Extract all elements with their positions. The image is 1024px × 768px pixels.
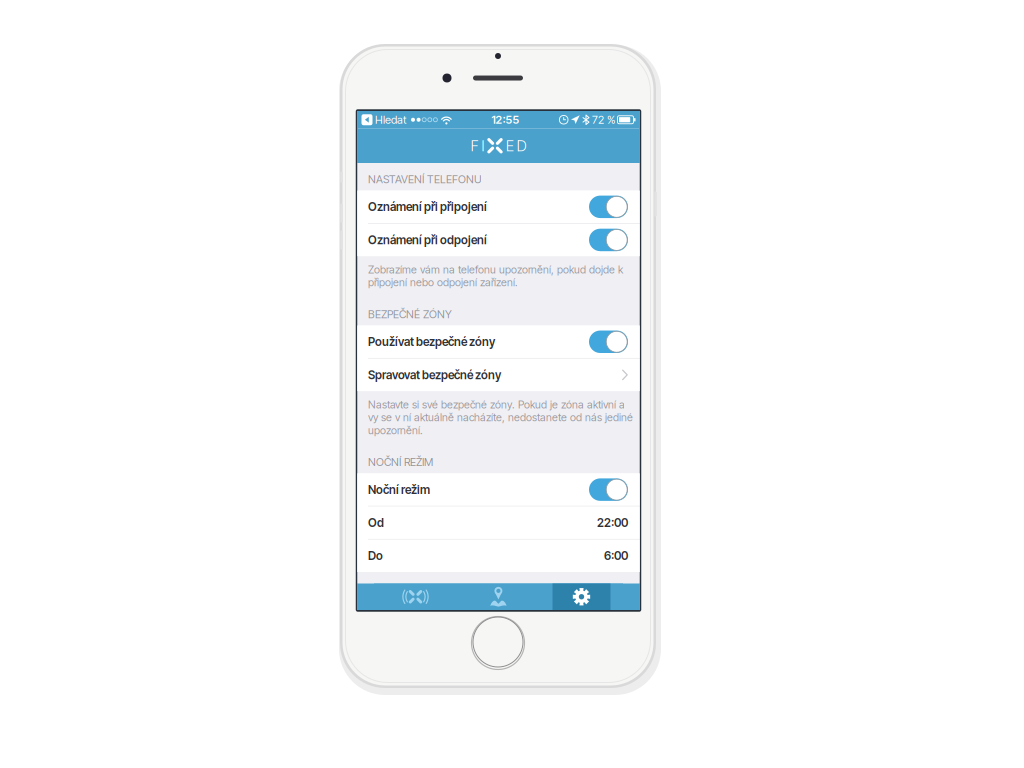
- staticText: D: [516, 137, 526, 155]
- staticText: NOČNÍ REŽIM: [368, 455, 433, 469]
- button[interactable]: Zpět do Hledat: [361, 113, 407, 126]
- staticText: Do: [368, 549, 383, 563]
- button[interactable]: Od: [357, 506, 639, 539]
- staticText: Noční režim: [368, 482, 430, 497]
- staticText: E: [506, 137, 514, 155]
- staticText: 22:00: [597, 516, 628, 530]
- button[interactable]: Oznámení při odpojení: [357, 224, 639, 256]
- button[interactable]: Mapa: [457, 583, 540, 610]
- staticText: NASTAVENÍ TELEFONU: [368, 173, 482, 186]
- button[interactable]: Noční režim: [357, 473, 639, 506]
- staticText: 72 %: [592, 113, 615, 126]
- staticText: BEZPEČNÉ ZÓNY: [368, 307, 452, 321]
- staticText: Spravovat bezpečné zóny: [368, 368, 501, 382]
- staticText: Používat bezpečné zóny: [368, 335, 495, 349]
- staticText: 12:55: [491, 113, 519, 127]
- staticText: Oznámení při odpojení: [368, 233, 487, 247]
- staticText: F: [470, 137, 478, 155]
- button[interactable]: Zařízení: [374, 583, 457, 610]
- button[interactable]: Oznámení při připojení: [357, 191, 639, 223]
- staticText: 6:00: [604, 549, 628, 563]
- button[interactable]: Do: [357, 540, 639, 572]
- staticText: Zobrazíme vám na telefonu upozornění, po…: [368, 263, 623, 289]
- staticText: Oznámení při připojení: [368, 200, 487, 214]
- button[interactable]: Používat bezpečné zóny: [357, 326, 639, 358]
- button[interactable]: Spravovat bezpečné zóny: [357, 359, 639, 391]
- staticText: Od: [368, 516, 384, 530]
- button[interactable]: Nastavení: [540, 583, 623, 610]
- staticText: Nastavte si své bezpečné zóny. Pokud je …: [368, 398, 633, 437]
- staticText: I: [481, 137, 484, 155]
- staticText: Hledat: [375, 113, 407, 126]
